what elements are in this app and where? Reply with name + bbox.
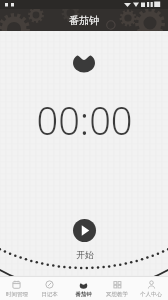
staticText: 番茄钟 <box>69 14 99 27</box>
staticText: 冥想教学 <box>106 291 128 298</box>
button[interactable]: 个人中心 <box>134 277 168 300</box>
other: 开始 <box>73 219 96 242</box>
button[interactable]: 开始 <box>63 217 106 262</box>
staticText: 日记本 <box>41 291 58 298</box>
staticText: 番茄钟 <box>75 291 92 298</box>
staticText: 个人中心 <box>140 291 162 298</box>
button[interactable]: 时间管理 <box>0 277 33 300</box>
staticText: 开始 <box>76 249 94 260</box>
button[interactable]: 日记本 <box>33 277 66 300</box>
staticText: 00:00 <box>36 94 133 146</box>
other: 番茄 <box>73 52 95 72</box>
staticText: 时间管理 <box>6 291 28 298</box>
button[interactable]: 冥想教学 <box>100 277 134 300</box>
button[interactable]: 番茄钟 <box>66 277 100 300</box>
